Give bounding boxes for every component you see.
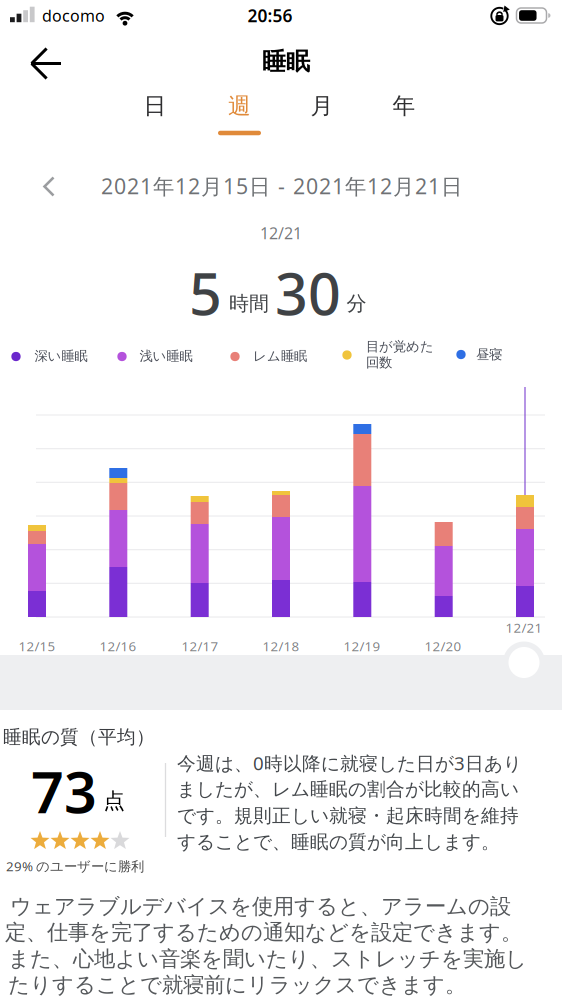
staticText: ウェアラブルデバイスを使用すると、アラームの設	[10, 893, 511, 920]
staticText: 日	[143, 92, 166, 120]
button[interactable]: 前の週	[34, 173, 64, 199]
staticText: 12/21	[505, 619, 542, 636]
staticText: 今週は、0時以降に就寝した日が3日あり	[177, 751, 522, 775]
staticText: 睡眠	[262, 47, 310, 76]
staticText: 73	[31, 753, 97, 829]
staticText: 浅い睡眠	[139, 348, 192, 364]
staticText: 回数	[366, 354, 392, 371]
staticText: 12/18	[262, 637, 299, 655]
staticText: 月	[310, 92, 333, 120]
staticText: 週	[228, 92, 251, 120]
staticText: 分	[346, 291, 366, 316]
staticText: 12/19	[343, 637, 380, 655]
button[interactable]: 戻る	[20, 39, 72, 87]
staticText: 12/21	[260, 222, 302, 244]
button[interactable]: 日付選択ハンドル	[508, 647, 539, 678]
staticText: 定、仕事を完了するための通知などを設定できます。	[5, 919, 522, 946]
staticText: レム睡眠	[253, 348, 307, 364]
button[interactable]: 年	[372, 85, 436, 127]
staticText: また、心地よい音楽を聞いたり、ストレッチを実施し	[8, 946, 527, 972]
button[interactable]: 週	[207, 85, 271, 127]
staticText: ましたが、レム睡眠の割合が比較的高い	[177, 778, 519, 801]
staticText: です。規則正しい就寝・起床時間を維持	[177, 804, 519, 827]
staticText: 昼寝	[476, 346, 502, 363]
staticText: 睡眠の質（平均）	[3, 725, 155, 748]
staticText: 12/16	[99, 637, 136, 655]
staticText: 2021年12月15日 - 2021年12月21日	[101, 172, 462, 200]
staticText: 5	[189, 255, 222, 331]
staticText: することで、睡眠の質が向上します。	[177, 830, 500, 853]
staticText: 深い睡眠	[34, 348, 87, 364]
staticText: 時間	[229, 291, 269, 316]
staticText: docomo	[42, 5, 105, 26]
staticText: 12/17	[181, 637, 218, 655]
staticText: 点	[103, 788, 124, 814]
staticText: 目が覚めた	[366, 338, 434, 355]
staticText: 年	[392, 92, 415, 120]
button[interactable]: 月	[290, 85, 354, 127]
button[interactable]: 日	[123, 85, 187, 127]
staticText: 20:56	[247, 4, 292, 27]
staticText: 12/15	[18, 637, 55, 655]
staticText: 12/20	[424, 637, 461, 655]
staticText: 30	[275, 255, 341, 331]
staticText: たりすることで就寝前にリラックスできます。	[8, 972, 466, 998]
staticText: 29% のユーザーに勝利	[6, 857, 144, 875]
